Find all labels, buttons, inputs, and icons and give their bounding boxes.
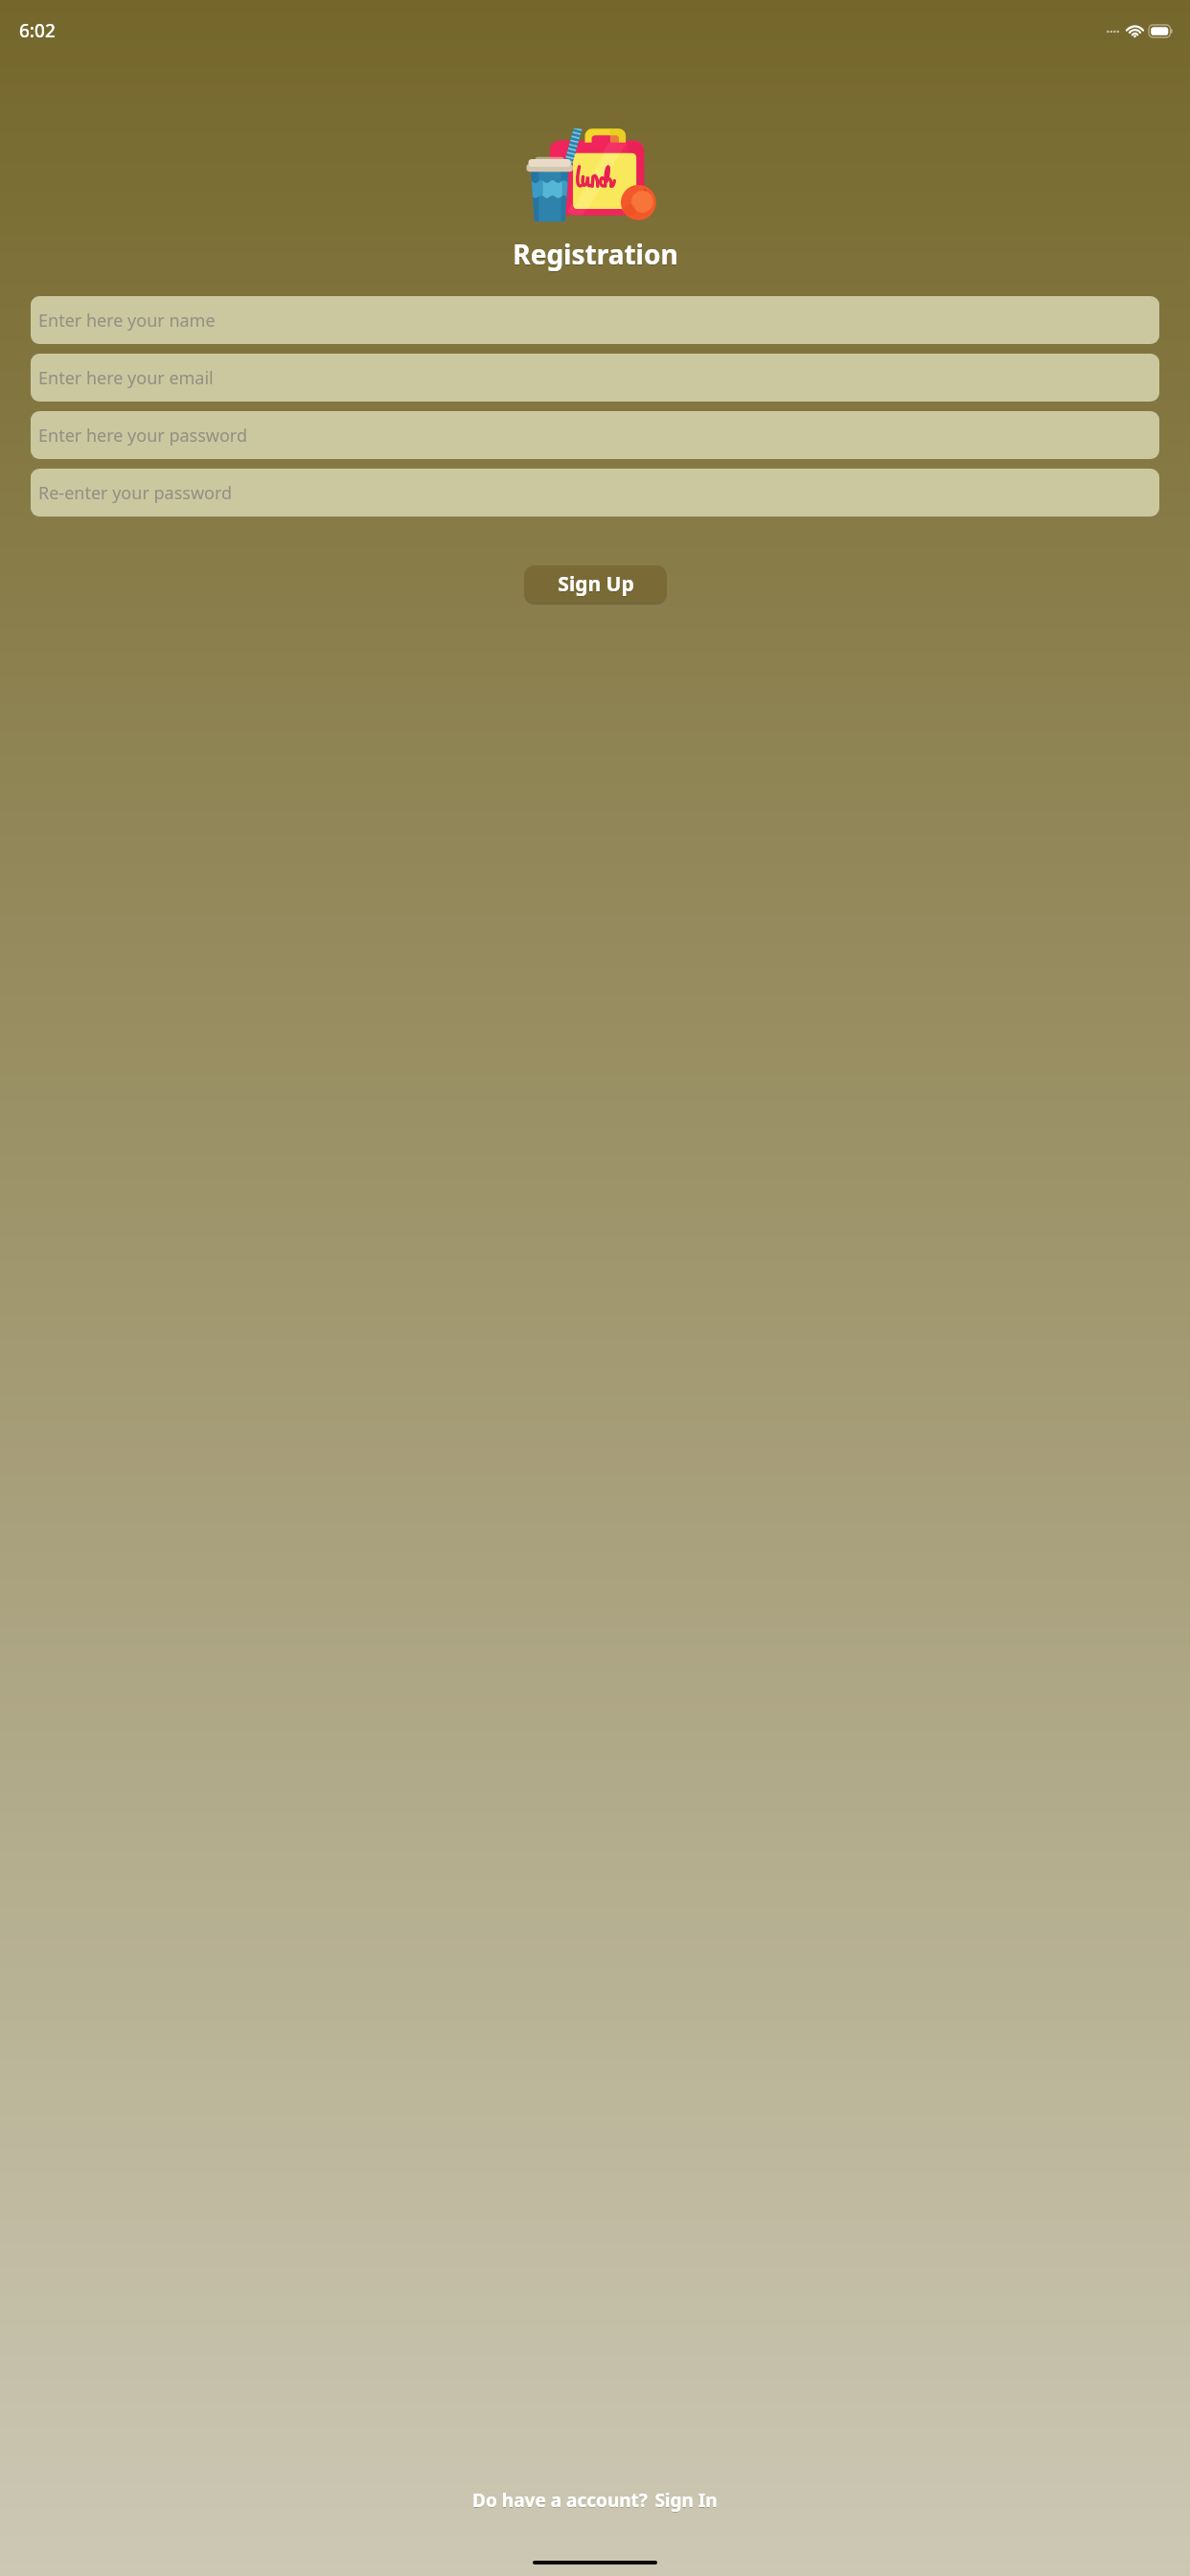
staticText: Sign Up [558, 570, 634, 598]
button[interactable]: Enter here your name [31, 296, 1159, 344]
button[interactable]: Enter here your email [31, 354, 1159, 402]
staticText: Enter here your password [38, 424, 247, 448]
staticText: Do have a account? [472, 2489, 648, 2514]
staticText: Sign In [654, 2489, 718, 2514]
staticText: Re-enter your password [38, 481, 233, 505]
button[interactable]: Enter here your password [31, 411, 1159, 459]
staticText: Do have a account? [472, 2488, 648, 2513]
staticText: Enter here your email [38, 366, 214, 390]
staticText: Enter here your name [38, 309, 216, 333]
button[interactable]: Re-enter your password [31, 469, 1159, 517]
button[interactable]: Sign Up [524, 565, 667, 602]
staticText: Registration [513, 237, 678, 273]
staticText: Sign Up [558, 571, 634, 599]
staticText: 6:02 [19, 18, 56, 43]
staticText: Sign In [654, 2488, 718, 2513]
staticText: Registration [513, 236, 678, 272]
button[interactable]: Do have a account? [459, 2480, 731, 2520]
